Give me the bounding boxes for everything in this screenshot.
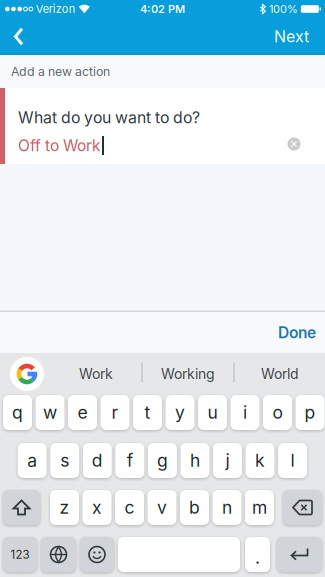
staticText: c (124, 497, 134, 518)
button[interactable]: Period (245, 537, 270, 572)
button[interactable]: q (3, 395, 32, 430)
button[interactable]: f (115, 443, 144, 478)
staticText: y (175, 402, 185, 423)
button[interactable]: p (295, 395, 324, 430)
button[interactable]: Done (278, 323, 325, 342)
staticText: m (252, 497, 267, 518)
button[interactable]: w (35, 395, 64, 430)
staticText: Done (278, 323, 316, 342)
staticText: What do you want to do? (18, 108, 200, 127)
staticText: k (255, 450, 265, 471)
staticText: h (190, 450, 200, 471)
button[interactable]: d (83, 443, 112, 478)
staticText: g (157, 450, 168, 471)
button[interactable]: x (82, 490, 111, 525)
button[interactable]: Emoji (80, 537, 114, 572)
button[interactable]: n (212, 490, 241, 525)
staticText: z (59, 497, 69, 518)
button[interactable]: Numbers (3, 537, 37, 572)
staticText: i (243, 402, 247, 423)
staticText: j (225, 450, 229, 471)
staticText: a (27, 450, 37, 471)
button[interactable]: u (198, 395, 227, 430)
staticText: Off to Work (18, 136, 101, 155)
staticText: 4:02 PM (140, 2, 185, 16)
button[interactable]: Delete (283, 490, 322, 525)
staticText: f (127, 450, 133, 471)
button[interactable]: l (278, 443, 307, 478)
staticText: s (60, 450, 69, 471)
staticText: . (255, 547, 260, 568)
staticText: Verizon (36, 2, 75, 16)
staticText: 123 (10, 547, 29, 561)
button[interactable]: b (180, 490, 209, 525)
staticText: b (189, 497, 200, 518)
button[interactable]: r (100, 395, 129, 430)
button[interactable]: Work (56, 359, 136, 389)
button[interactable]: Back (0, 19, 24, 54)
staticText: Next (274, 27, 309, 46)
button[interactable]: s (50, 443, 79, 478)
staticText: x (92, 497, 102, 518)
button[interactable]: Next (274, 19, 325, 54)
button[interactable]: g (148, 443, 177, 478)
button[interactable]: j (213, 443, 242, 478)
button[interactable]: Clear text (287, 137, 300, 150)
button[interactable]: m (245, 490, 274, 525)
staticText: t (144, 402, 150, 423)
staticText: p (304, 402, 315, 423)
staticText: o (272, 402, 282, 423)
button[interactable]: World (240, 359, 320, 389)
staticText: Work (79, 365, 113, 382)
staticText: World (261, 365, 299, 382)
button[interactable]: Shift (3, 490, 40, 525)
button[interactable]: Google search (10, 357, 44, 391)
staticText: 100% (269, 2, 298, 16)
button[interactable]: t (133, 395, 162, 430)
button[interactable]: o (263, 395, 292, 430)
staticText: Working (161, 365, 215, 382)
button[interactable]: Return (277, 537, 322, 572)
button[interactable]: z (50, 490, 79, 525)
button[interactable]: v (147, 490, 176, 525)
button[interactable]: y (165, 395, 194, 430)
staticText: n (222, 497, 232, 518)
button[interactable]: k (245, 443, 274, 478)
button[interactable]: Working (148, 359, 228, 389)
button[interactable]: a (18, 443, 47, 478)
staticText: r (111, 402, 118, 423)
staticText: d (92, 450, 103, 471)
staticText: v (157, 497, 167, 518)
button[interactable]: i (230, 395, 259, 430)
staticText: e (77, 402, 87, 423)
staticText: l (291, 450, 295, 471)
button[interactable]: h (180, 443, 209, 478)
staticText: w (43, 402, 57, 423)
button[interactable]: e (68, 395, 97, 430)
staticText: u (207, 402, 217, 423)
button[interactable]: Switch keyboard (41, 537, 76, 572)
staticText: Add a new action (11, 64, 110, 79)
staticText: q (12, 402, 23, 423)
button[interactable]: c (115, 490, 144, 525)
